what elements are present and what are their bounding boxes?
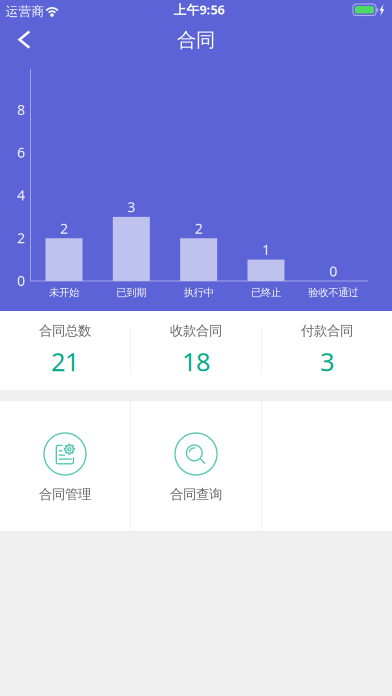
staticText: 合同管理 — [39, 486, 91, 503]
staticText: 运营商 — [5, 3, 44, 19]
staticText: 3 — [320, 344, 334, 379]
staticText: 2 — [17, 228, 25, 247]
staticText: 合同总数 — [39, 322, 91, 339]
staticText: 2 — [60, 219, 68, 238]
staticText: 未开始 — [49, 286, 79, 299]
staticText: 合同 — [177, 28, 215, 52]
staticText: 执行中 — [184, 286, 214, 299]
staticText: 18 — [182, 344, 210, 379]
staticText: 已到期 — [116, 286, 146, 299]
button[interactable]: 合同查询 — [131, 401, 261, 531]
button[interactable]: 合同管理 — [0, 401, 130, 531]
staticText: 验收不通过 — [308, 286, 358, 299]
staticText: 收款合同 — [170, 322, 222, 339]
staticText: 1 — [262, 240, 270, 259]
staticText: 合同查询 — [170, 486, 222, 503]
staticText: 0 — [17, 271, 25, 290]
staticText: 4 — [17, 185, 25, 205]
staticText: 3 — [127, 197, 135, 216]
staticText: 付款合同 — [301, 322, 353, 339]
staticText: 已终止 — [251, 286, 281, 299]
staticText: 0 — [329, 261, 337, 281]
staticText: 8 — [17, 100, 25, 119]
button[interactable]: 返回 — [10, 22, 40, 62]
staticText: 上午9:56 — [173, 1, 224, 18]
staticText: 6 — [17, 143, 25, 162]
staticText: 21 — [51, 344, 79, 379]
staticText: 2 — [195, 219, 203, 238]
